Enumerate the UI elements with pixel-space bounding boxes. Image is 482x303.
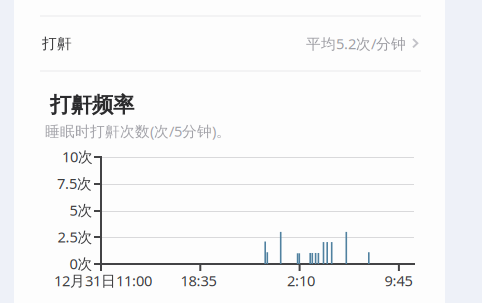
staticText: 12月31日11:00	[54, 271, 152, 290]
staticText: 9:45	[384, 271, 412, 290]
staticText: 打鼾	[42, 34, 72, 52]
staticText: 平均5.2次/分钟	[306, 34, 406, 53]
staticText: 2.5次	[57, 227, 92, 246]
staticText: 打鼾频率	[50, 92, 134, 118]
staticText: 0次	[69, 254, 92, 273]
staticText: 18:35	[180, 271, 216, 290]
staticText: 2:10	[287, 271, 315, 290]
staticText: 10次	[62, 147, 93, 166]
button[interactable]: 打鼾	[14, 16, 445, 71]
staticText: 睡眠时打鼾次数(次/5分钟)。	[45, 121, 231, 141]
staticText: 5次	[69, 200, 92, 220]
staticText: 7.5次	[57, 173, 92, 193]
